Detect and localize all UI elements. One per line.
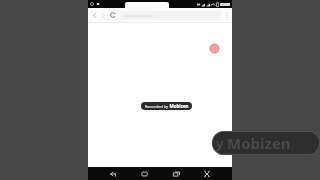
staticText: Mobizen <box>227 133 291 153</box>
staticText: Mobizen <box>169 103 189 109</box>
button[interactable] <box>125 2 169 8</box>
button[interactable]: Back <box>90 11 99 20</box>
button[interactable]: Screenshot <box>200 167 214 180</box>
button[interactable]: Notification badge <box>210 44 219 53</box>
button[interactable]: Forward <box>99 11 108 20</box>
button[interactable]: Recent apps <box>169 167 183 180</box>
button[interactable]: Reload <box>108 10 118 20</box>
button[interactable]: Back <box>106 167 120 180</box>
staticText: Recorded by <box>144 104 169 109</box>
button[interactable]: More options <box>223 10 230 21</box>
staticText: y <box>216 134 227 152</box>
button[interactable]: Home <box>137 167 151 180</box>
